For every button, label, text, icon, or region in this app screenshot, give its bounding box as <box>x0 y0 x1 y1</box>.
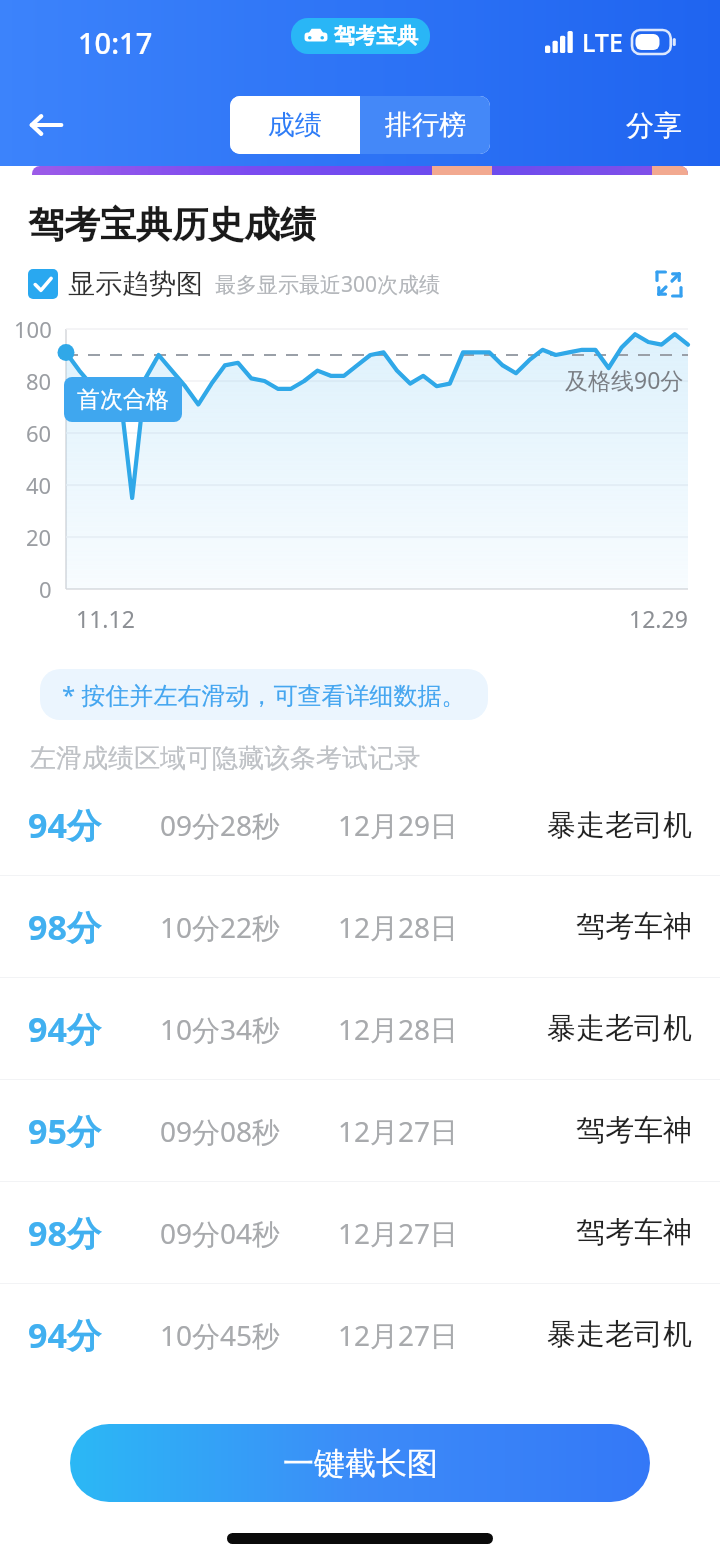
staticText: 09分08秒 <box>160 1112 281 1150</box>
staticText: 成绩 <box>268 108 322 142</box>
staticText: 10:17 <box>78 23 153 62</box>
staticText: 12月28日 <box>338 908 459 946</box>
button[interactable]: 94分 <box>0 1284 720 1385</box>
staticText: 94分 <box>28 802 101 848</box>
staticText: 09分04秒 <box>160 1214 281 1252</box>
staticText: 12月29日 <box>338 806 459 844</box>
staticText: 94分 <box>28 1312 101 1358</box>
staticText: 驾考车神 <box>576 1214 692 1251</box>
staticText: 95分 <box>28 1108 101 1154</box>
button[interactable]: 94分 <box>0 978 720 1079</box>
staticText: 暴走老司机 <box>547 1010 692 1047</box>
staticText: 排行榜 <box>385 108 466 142</box>
staticText: * 按住并左右滑动，可查看详细数据。 <box>62 678 466 711</box>
button[interactable]: Back <box>18 97 74 153</box>
staticText: 暴走老司机 <box>547 1316 692 1353</box>
staticText: 显示趋势图 <box>68 267 203 301</box>
staticText: 12月27日 <box>338 1112 459 1150</box>
staticText: 最多显示最近300次成绩 <box>215 270 441 299</box>
staticText: 驾考宝典历史成绩 <box>28 202 316 247</box>
button[interactable]: 显示趋势图 <box>28 267 203 301</box>
staticText: 09分28秒 <box>160 806 281 844</box>
staticText: 驾考车神 <box>576 1112 692 1149</box>
staticText: 暴走老司机 <box>547 807 692 844</box>
staticText: 12月27日 <box>338 1316 459 1354</box>
staticText: 10分22秒 <box>160 908 281 946</box>
button[interactable]: 分享 <box>618 100 690 151</box>
button[interactable]: 排行榜 <box>360 96 490 154</box>
staticText: 98分 <box>28 904 101 950</box>
button[interactable]: 成绩 <box>230 96 360 154</box>
staticText: 98分 <box>28 1210 101 1256</box>
staticText: 12月27日 <box>338 1214 459 1252</box>
staticText: 驾考宝典 <box>334 23 418 49</box>
button[interactable]: Fullscreen <box>646 261 692 307</box>
staticText: 10分34秒 <box>160 1010 281 1048</box>
staticText: LTE <box>582 25 623 59</box>
button[interactable]: 98分 <box>0 876 720 977</box>
staticText: 10分45秒 <box>160 1316 281 1354</box>
staticText: 左滑成绩区域可隐藏该条考试记录 <box>30 742 420 775</box>
staticText: 驾考车神 <box>576 908 692 945</box>
staticText: 94分 <box>28 1006 101 1052</box>
button[interactable]: 94分 <box>0 775 720 875</box>
staticText: 分享 <box>626 108 682 143</box>
staticText: 一键截长图 <box>283 1444 438 1483</box>
button[interactable]: 95分 <box>0 1080 720 1181</box>
staticText: 12月28日 <box>338 1010 459 1048</box>
button[interactable]: 一键截长图 <box>70 1424 650 1502</box>
button[interactable]: 98分 <box>0 1182 720 1283</box>
